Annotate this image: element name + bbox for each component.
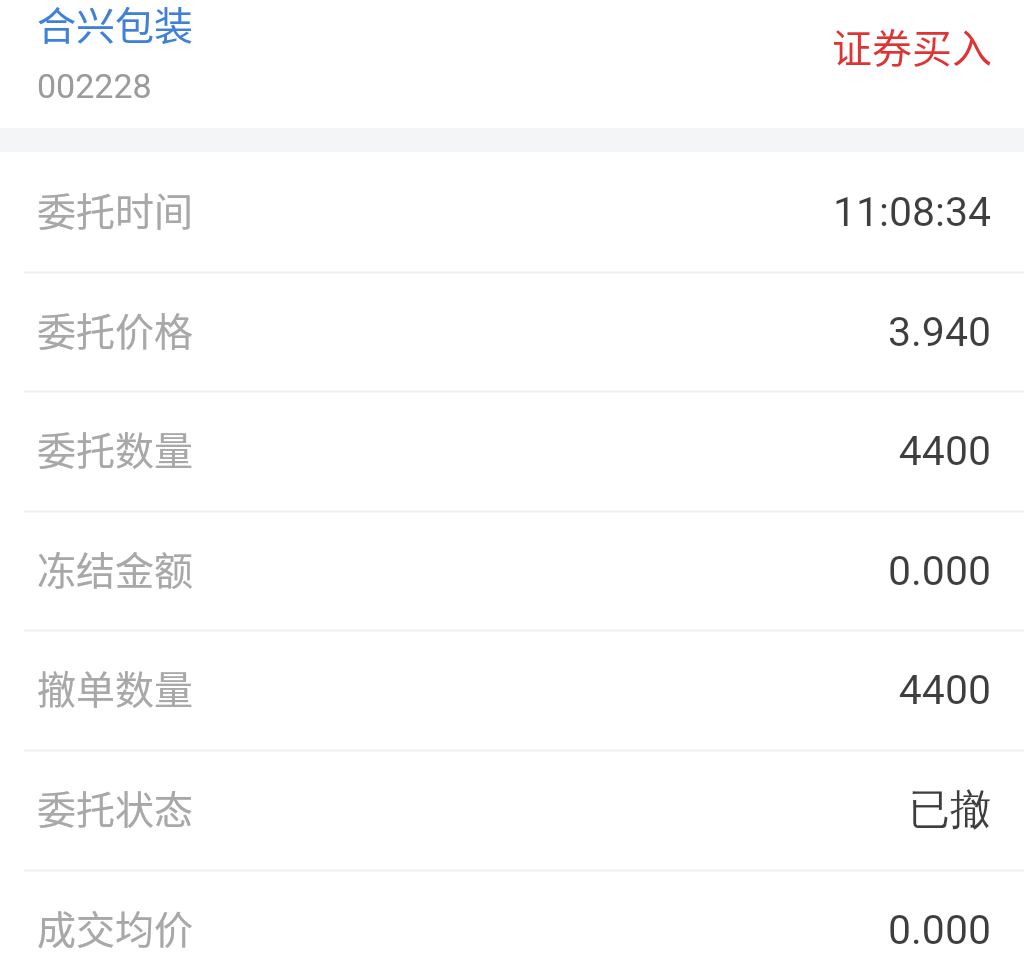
- staticText: 0.000: [888, 906, 991, 954]
- staticText: 委托时间: [37, 181, 194, 237]
- staticText: 证券买入: [832, 17, 992, 75]
- staticText: 合兴包装: [37, 0, 194, 51]
- button[interactable]: 委托价格: [0, 272, 1024, 391]
- staticText: 3.940: [888, 308, 991, 356]
- staticText: 委托价格: [37, 301, 194, 357]
- button[interactable]: 冻结金额: [0, 511, 1024, 630]
- staticText: 委托数量: [37, 420, 194, 476]
- button[interactable]: 成交均价: [0, 870, 1024, 977]
- button[interactable]: 合兴包装: [0, 0, 1024, 128]
- staticText: 成交均价: [37, 899, 194, 955]
- staticText: 11:08:34: [832, 188, 991, 236]
- button[interactable]: 撤单数量: [0, 630, 1024, 750]
- button[interactable]: 委托数量: [0, 391, 1024, 511]
- staticText: 委托状态: [37, 779, 194, 835]
- staticText: 4400: [898, 427, 991, 475]
- staticText: 002228: [37, 66, 152, 106]
- staticText: 撤单数量: [37, 659, 194, 715]
- button[interactable]: 委托时间: [0, 152, 1024, 272]
- staticText: 0.000: [888, 547, 991, 595]
- staticText: 冻结金额: [37, 540, 194, 596]
- button[interactable]: 委托状态: [0, 750, 1024, 870]
- staticText: 已撤: [909, 784, 991, 836]
- staticText: 4400: [898, 666, 991, 714]
